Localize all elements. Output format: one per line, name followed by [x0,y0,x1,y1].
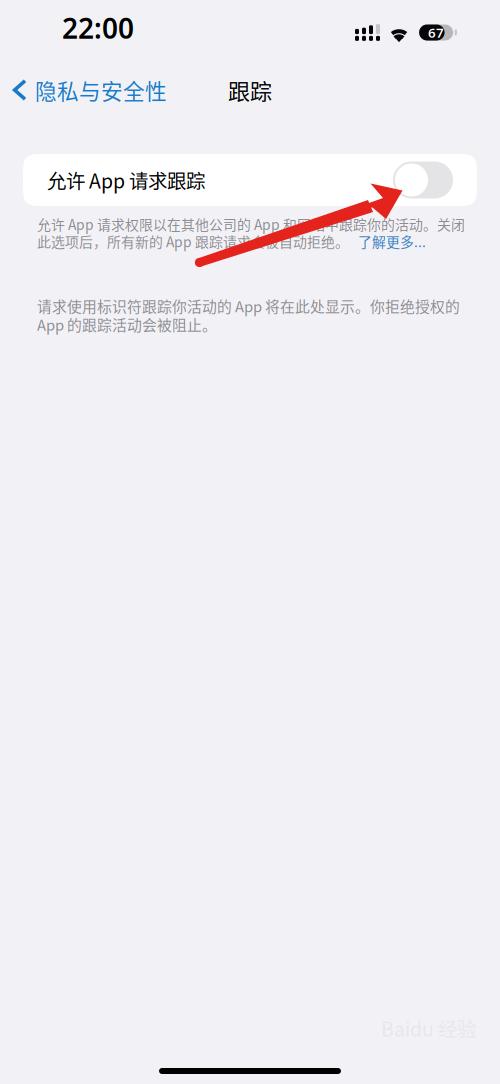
staticText: 允许 App 请求权限以在其他公司的 App 和网站中跟踪你的活动。关闭 [37,214,465,234]
staticText: 隐私与安全性 [35,74,167,106]
staticText: 允许 App 请求跟踪 [47,166,205,194]
button[interactable]: 隐私与安全性 [0,68,177,112]
button[interactable]: 了解更多... [358,231,426,251]
staticText: Baidu 经验 [381,1014,476,1042]
staticText: App 的跟踪活动会被阻止。 [37,314,217,335]
staticText: 67 [428,24,444,41]
staticText: 跟踪 [228,74,272,106]
button[interactable]: 允许 App 请求跟踪 [23,154,477,206]
staticText: 22:00 [62,9,134,47]
staticText: 此选项后，所有新的 App 跟踪请求会被自动拒绝。 [37,231,349,251]
staticText: 了解更多... [358,231,426,251]
staticText: 请求使用标识符跟踪你活动的 App 将在此处显示。你拒绝授权的 [37,295,460,317]
